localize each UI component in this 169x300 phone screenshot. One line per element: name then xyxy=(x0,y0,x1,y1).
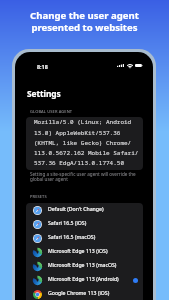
staticText: Mozilla/5.0 (Linux; Android 13.0) AppleW… xyxy=(34,118,139,166)
staticText: PRESETS xyxy=(30,194,47,199)
button[interactable]: Mozilla/5.0 (Linux; Android 13.0) AppleW… xyxy=(26,117,143,170)
staticText: Setting a site-specific user agent will … xyxy=(30,171,136,182)
staticText: Safari 16.5 (iOS) xyxy=(48,219,87,226)
staticText: 8:18 xyxy=(37,63,48,70)
button[interactable]: Microsoft Edge 113 (iOS) xyxy=(26,245,143,259)
staticText: GLOBAL USER AGENT xyxy=(30,109,73,114)
button[interactable]: Microsoft Edge 113 (Android) xyxy=(26,273,143,287)
button[interactable]: Safari 16.5 (macOS) xyxy=(26,231,143,245)
staticText: Microsoft Edge 113 (macOS) xyxy=(48,261,117,268)
staticText: Microsoft Edge 113 (Android) xyxy=(48,275,119,282)
button[interactable]: Default (Don't Change) xyxy=(26,203,143,217)
staticText: Microsoft Edge 113 (iOS) xyxy=(48,247,108,254)
staticText: Change the user agent presented to websi… xyxy=(0,9,169,34)
button[interactable]: Microsoft Edge 113 (macOS) xyxy=(26,259,143,273)
staticText: Default (Don't Change) xyxy=(48,205,104,212)
staticText: Google Chrome 113 (iOS) xyxy=(48,289,110,296)
button[interactable]: Google Chrome 113 (iOS) xyxy=(26,287,143,300)
staticText: Safari 16.5 (macOS) xyxy=(48,233,96,240)
staticText: Settings xyxy=(27,88,61,99)
button[interactable]: Safari 16.5 (iOS) xyxy=(26,217,143,231)
